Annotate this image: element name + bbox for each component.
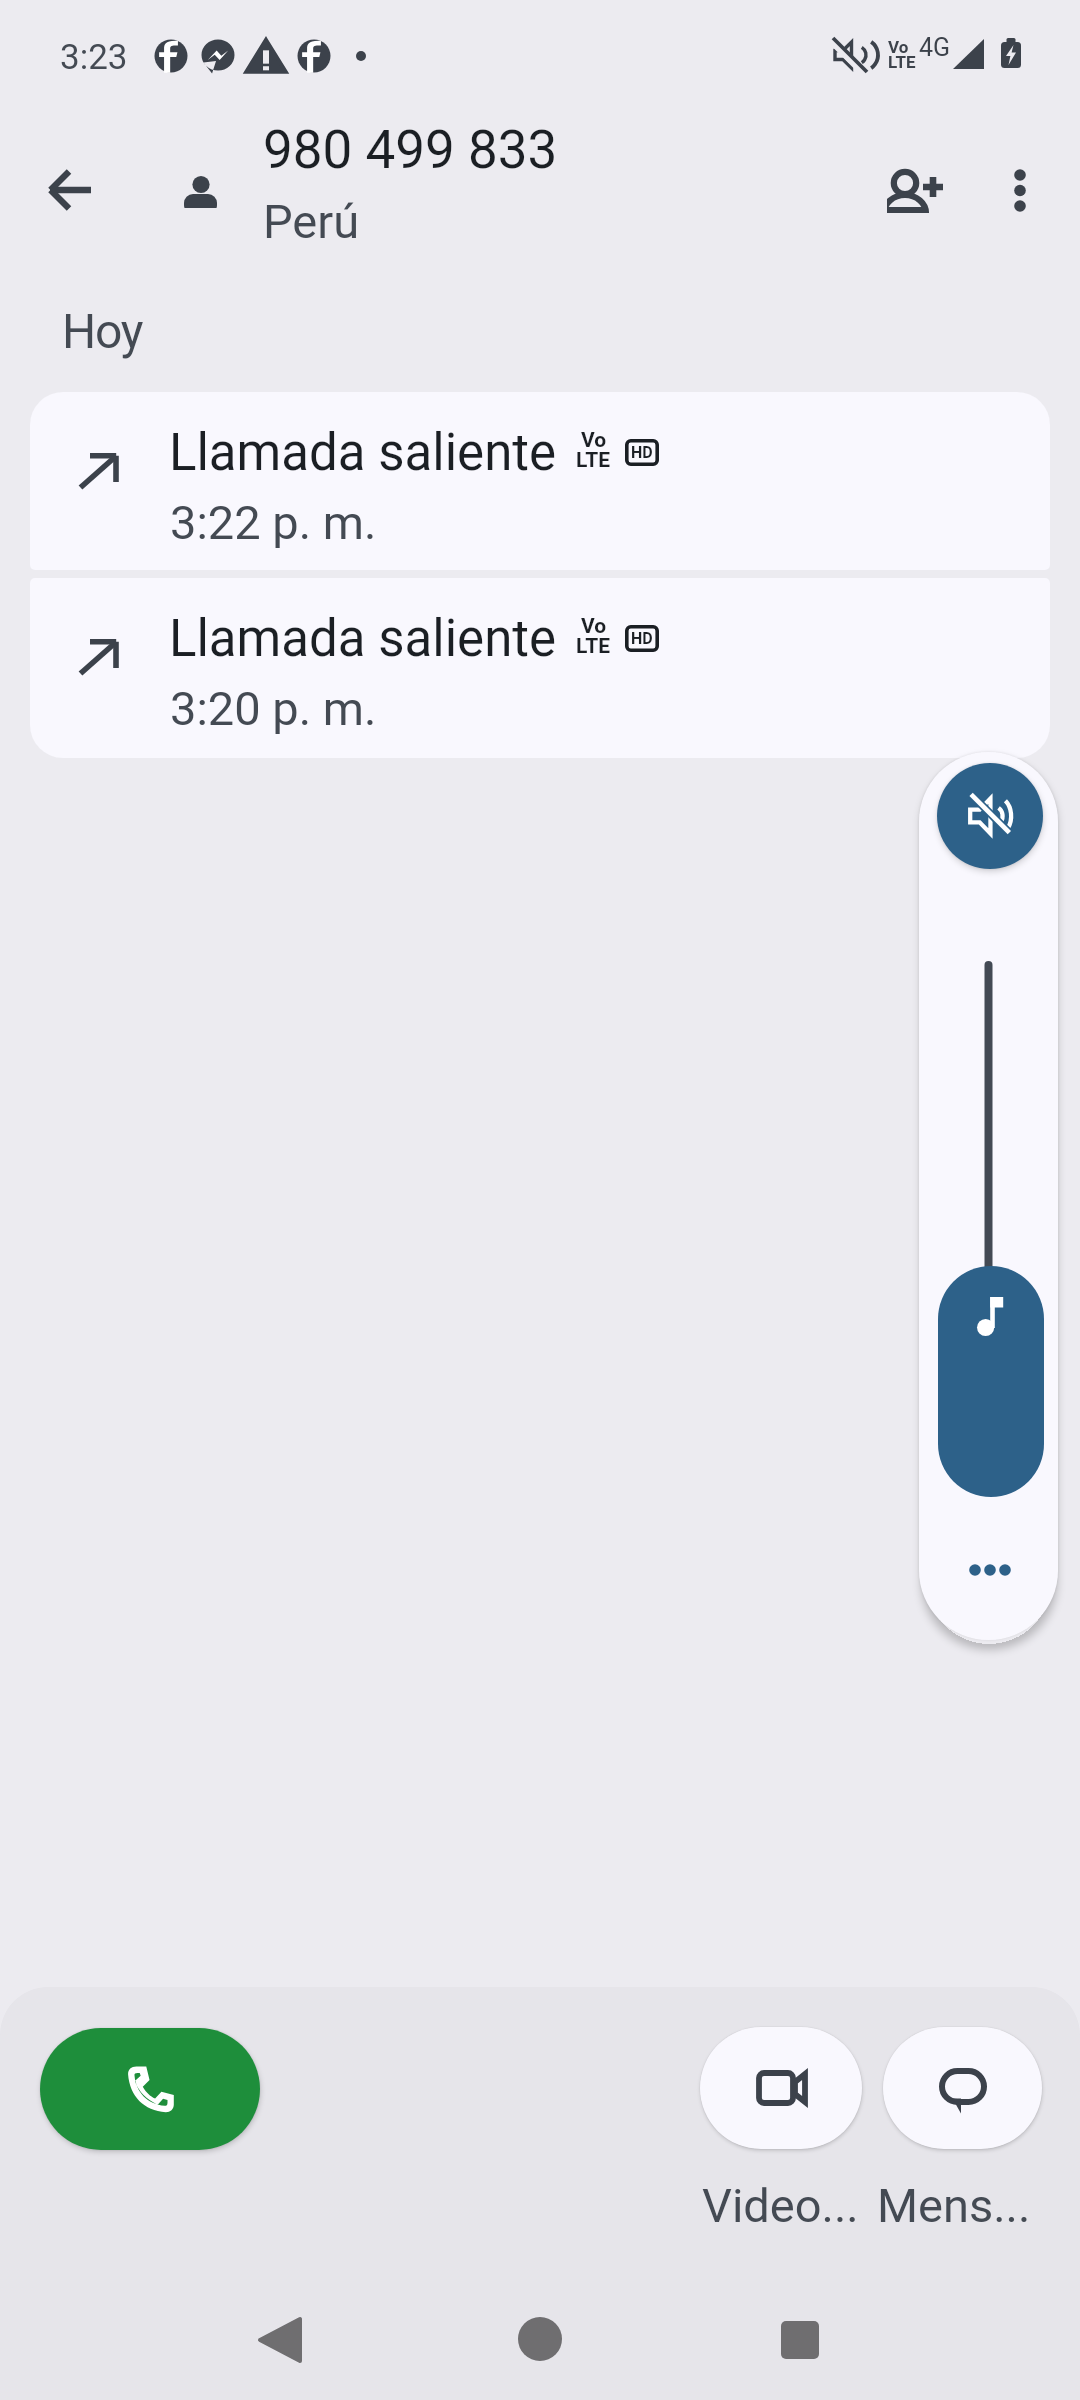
staticText: Video... bbox=[702, 2178, 859, 2233]
button[interactable]: More options bbox=[968, 143, 1072, 247]
button[interactable]: Back bbox=[190, 2312, 370, 2368]
staticText: Llamada saliente bbox=[169, 423, 557, 483]
staticText: Mens... bbox=[877, 2178, 1031, 2233]
button[interactable]: More volume settings bbox=[962, 1544, 1032, 1596]
button[interactable]: Add contact bbox=[863, 140, 967, 244]
staticText: HD bbox=[631, 629, 653, 648]
staticText: Vo bbox=[888, 37, 909, 57]
staticText: LTE bbox=[576, 634, 611, 659]
staticText: 3:22 p. m. bbox=[170, 495, 377, 550]
button[interactable]: Llamada saliente 3:20 p. m. bbox=[30, 578, 1050, 758]
staticText: Vo bbox=[581, 428, 607, 453]
staticText: Llamada saliente bbox=[169, 609, 557, 669]
staticText: Hoy bbox=[62, 303, 143, 359]
button[interactable]: Recent apps bbox=[710, 2312, 890, 2368]
staticText: Vo bbox=[581, 614, 607, 639]
button[interactable]: Llamada saliente 3:22 p. m. bbox=[30, 392, 1050, 570]
button[interactable]: Video call bbox=[700, 2027, 862, 2149]
button[interactable]: Media volume bbox=[938, 1266, 1044, 1497]
button[interactable]: Call bbox=[40, 2028, 260, 2150]
staticText: HD bbox=[631, 443, 653, 462]
staticText: 3:20 p. m. bbox=[170, 681, 377, 736]
button[interactable]: Back bbox=[18, 138, 122, 242]
staticText: 4G bbox=[919, 33, 951, 62]
staticText: LTE bbox=[888, 52, 916, 72]
staticText: LTE bbox=[576, 448, 611, 473]
button[interactable]: Home bbox=[450, 2311, 630, 2367]
button[interactable]: Silence ringer bbox=[937, 763, 1043, 869]
staticText: 980 499 833 bbox=[263, 119, 558, 181]
staticText: Perú bbox=[263, 194, 360, 249]
staticText: 3:23 bbox=[60, 37, 128, 78]
button[interactable]: Send message bbox=[883, 2027, 1042, 2149]
